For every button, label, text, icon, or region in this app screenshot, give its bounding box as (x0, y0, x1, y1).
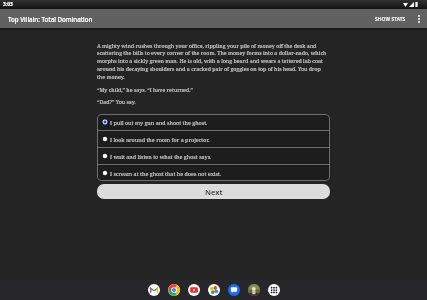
staticText: I pull out my gun and shoot the ghost. (110, 119, 208, 126)
button[interactable]: I scream at the ghost that he does not e… (97, 165, 330, 181)
staticText: Top Villain: Total Domination (8, 15, 93, 23)
button[interactable]: I wait and listen to what the ghost says… (97, 148, 330, 164)
button[interactable]: Gmail (148, 284, 160, 296)
button[interactable]: Chrome (168, 284, 180, 296)
button[interactable]: I look around the room for a projector. (97, 131, 330, 147)
staticText: I scream at the ghost that he does not e… (110, 170, 222, 177)
button[interactable]: Next (97, 184, 330, 199)
button[interactable]: SHOW STATS (370, 12, 411, 27)
button[interactable]: Messages (228, 284, 240, 296)
button[interactable]: I pull out my gun and shoot the ghost. (97, 114, 330, 130)
button[interactable]: Photos (208, 284, 220, 296)
staticText: “Dad?” You say. (97, 98, 136, 105)
staticText: SHOW STATS (375, 16, 406, 23)
staticText: “My child,” he says. “I have returned.” (97, 86, 193, 93)
button[interactable]: Profile (248, 284, 260, 296)
staticText: I look around the room for a projector. (110, 136, 210, 143)
button[interactable]: All apps (268, 284, 280, 296)
staticText: Next (205, 187, 223, 197)
staticText: 3:03 (3, 1, 13, 8)
staticText: I wait and listen to what the ghost says… (110, 153, 212, 160)
button[interactable]: More options (411, 11, 427, 27)
staticText: A mighty wind rushes through your office… (97, 42, 330, 81)
button[interactable]: YouTube (188, 284, 200, 296)
